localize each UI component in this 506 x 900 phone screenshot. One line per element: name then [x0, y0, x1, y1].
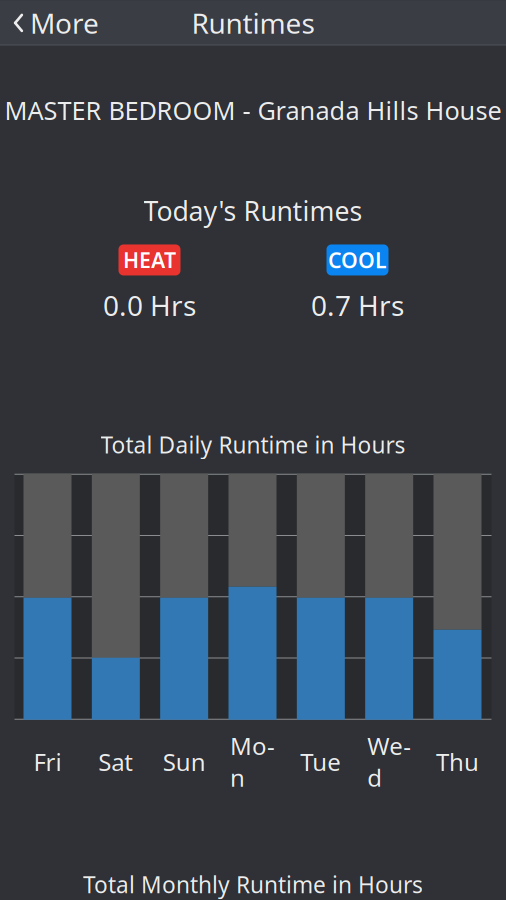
staticText: 0.7 Hrs — [311, 286, 404, 324]
staticText: Wed — [367, 730, 411, 793]
staticText: Total Monthly Runtime in Hours — [83, 869, 423, 900]
button[interactable]: More — [0, 0, 111, 45]
staticText: Today's Runtimes — [143, 193, 362, 228]
staticText: HEAT — [123, 246, 176, 274]
staticText: More — [30, 4, 99, 41]
staticText: Mon — [230, 730, 275, 793]
staticText: Sun — [163, 746, 206, 778]
staticText: MASTER BEDROOM - Granada Hills House — [4, 93, 501, 127]
staticText: Fri — [33, 746, 61, 778]
staticText: COOL — [328, 246, 387, 274]
staticText: Thu — [436, 746, 479, 778]
staticText: Runtimes — [191, 4, 314, 41]
staticText: Sat — [98, 746, 133, 778]
staticText: Total Daily Runtime in Hours — [100, 430, 405, 460]
staticText: Tue — [300, 746, 341, 778]
staticText: 0.0 Hrs — [103, 286, 196, 324]
